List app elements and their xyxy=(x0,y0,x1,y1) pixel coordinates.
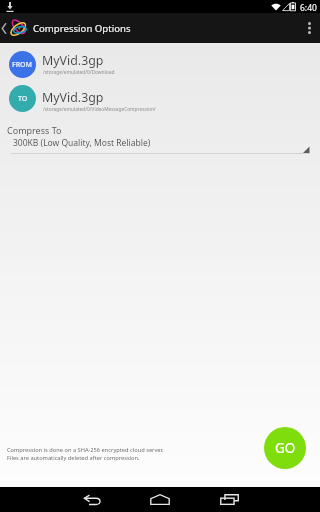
staticText: FROM xyxy=(12,60,33,70)
staticText: /storage/emulated/0/VideoMessageCompress… xyxy=(43,106,156,113)
button[interactable]: Home xyxy=(126,487,194,512)
staticText: Compress To xyxy=(7,124,62,136)
staticText: MyVid.3gp xyxy=(42,89,104,106)
button[interactable]: Back xyxy=(58,487,126,512)
staticText: MyVid.3gp xyxy=(42,52,104,69)
staticText: TO xyxy=(18,94,28,104)
button[interactable]: Navigate up xyxy=(0,13,28,43)
staticText: Files are automatically deleted after co… xyxy=(7,454,140,462)
staticText: GO xyxy=(275,439,296,457)
staticText: /storage/emulated/0/Download xyxy=(43,69,115,76)
button[interactable]: 300KB (Low Quality, Most Reliable) xyxy=(11,137,310,154)
button[interactable]: FROM xyxy=(0,51,320,85)
staticText: 300KB (Low Quality, Most Reliable) xyxy=(13,137,151,149)
staticText: Compression Options xyxy=(33,22,131,35)
button[interactable]: Recents xyxy=(195,487,263,512)
staticText: 6:40 xyxy=(300,2,317,14)
button[interactable]: More options xyxy=(298,13,320,43)
button[interactable]: TO xyxy=(0,88,320,122)
staticText: Compression is done on a SHA-256 encrypt… xyxy=(7,446,164,454)
button[interactable]: GO xyxy=(264,427,306,469)
